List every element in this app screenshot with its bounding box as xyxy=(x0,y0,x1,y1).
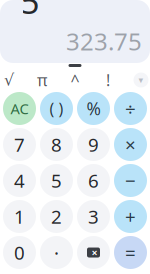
staticText: 9 xyxy=(88,132,99,157)
staticText: π xyxy=(37,69,47,91)
button[interactable]: ÷ xyxy=(114,92,147,125)
button[interactable]: AC xyxy=(3,92,36,125)
staticText: √ xyxy=(4,71,14,89)
button[interactable]: 5 xyxy=(40,164,73,197)
button[interactable]: · xyxy=(40,236,73,269)
staticText: % xyxy=(86,97,100,120)
button[interactable]: % xyxy=(77,92,110,125)
staticText: · xyxy=(54,240,59,265)
button[interactable]: ^ xyxy=(58,70,91,90)
button[interactable]: 2 xyxy=(40,200,73,233)
button[interactable]: 9 xyxy=(77,128,110,161)
staticText: 323.75 xyxy=(66,25,142,57)
staticText: 259×1.25 xyxy=(20,0,143,23)
staticText: ^ xyxy=(70,69,79,91)
button[interactable]: √ xyxy=(0,70,25,90)
button[interactable]: More functions xyxy=(124,70,150,90)
button[interactable]: 8 xyxy=(40,128,73,161)
button[interactable]: 4 xyxy=(3,164,36,197)
button[interactable]: ! xyxy=(91,70,124,90)
staticText: 5 xyxy=(51,168,62,193)
staticText: ( ) xyxy=(49,98,63,119)
staticText: 2 xyxy=(51,204,62,229)
staticText: × xyxy=(125,132,136,157)
staticText: ▾ xyxy=(138,75,143,85)
staticText: + xyxy=(125,204,136,229)
staticText: 7 xyxy=(14,132,25,157)
staticText: ! xyxy=(106,69,110,91)
staticText: = xyxy=(125,240,136,265)
staticText: AC xyxy=(10,99,28,118)
button[interactable]: 6 xyxy=(77,164,110,197)
staticText: 6 xyxy=(88,168,99,193)
staticText: 8 xyxy=(51,132,62,157)
button[interactable]: + xyxy=(114,200,147,233)
staticText: 3 xyxy=(88,204,99,229)
button[interactable]: 7 xyxy=(3,128,36,161)
button[interactable]: 0 xyxy=(3,236,36,269)
staticText: 1 xyxy=(14,204,25,229)
button[interactable]: π xyxy=(25,70,58,90)
staticText: 0 xyxy=(14,240,25,265)
staticText: ÷ xyxy=(125,96,136,121)
button[interactable]: 3 xyxy=(77,200,110,233)
button[interactable]: − xyxy=(114,164,147,197)
staticText: 4 xyxy=(14,168,25,193)
staticText: − xyxy=(125,168,136,193)
staticText: × xyxy=(91,245,97,260)
button[interactable]: = xyxy=(114,236,147,269)
button[interactable]: Backspace xyxy=(77,236,110,269)
button[interactable]: ( ) xyxy=(40,92,73,125)
button[interactable]: × xyxy=(114,128,147,161)
button[interactable]: 1 xyxy=(3,200,36,233)
